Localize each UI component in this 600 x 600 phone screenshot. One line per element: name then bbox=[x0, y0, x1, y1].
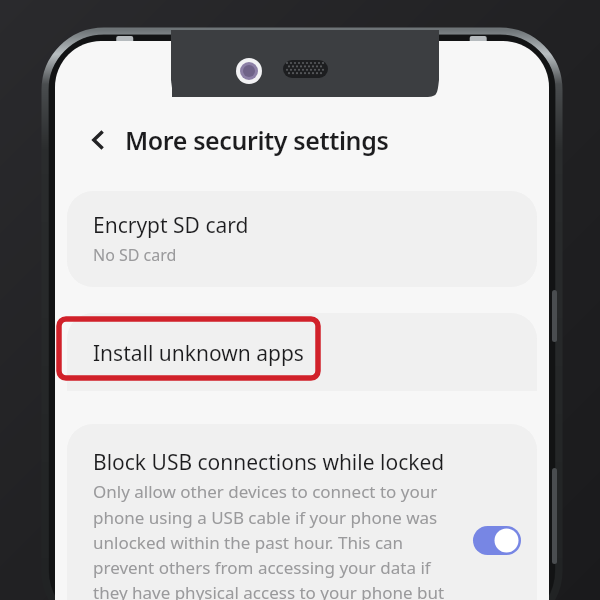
button[interactable]: Encrypt SD card bbox=[67, 191, 537, 287]
button[interactable]: Block USB connections while locked bbox=[67, 424, 537, 600]
staticText: More security settings bbox=[125, 123, 389, 157]
staticText: Only allow other devices to connect to y… bbox=[93, 480, 461, 600]
button[interactable]: Block USB connections while locked toggl… bbox=[469, 520, 525, 560]
staticText: No SD card bbox=[93, 244, 177, 266]
button[interactable]: Install unknown apps bbox=[67, 313, 537, 391]
staticText: Install unknown apps bbox=[93, 339, 304, 368]
staticText: Encrypt SD card bbox=[93, 211, 249, 240]
button[interactable]: Back bbox=[77, 118, 121, 162]
staticText: Block USB connections while locked bbox=[93, 448, 445, 477]
